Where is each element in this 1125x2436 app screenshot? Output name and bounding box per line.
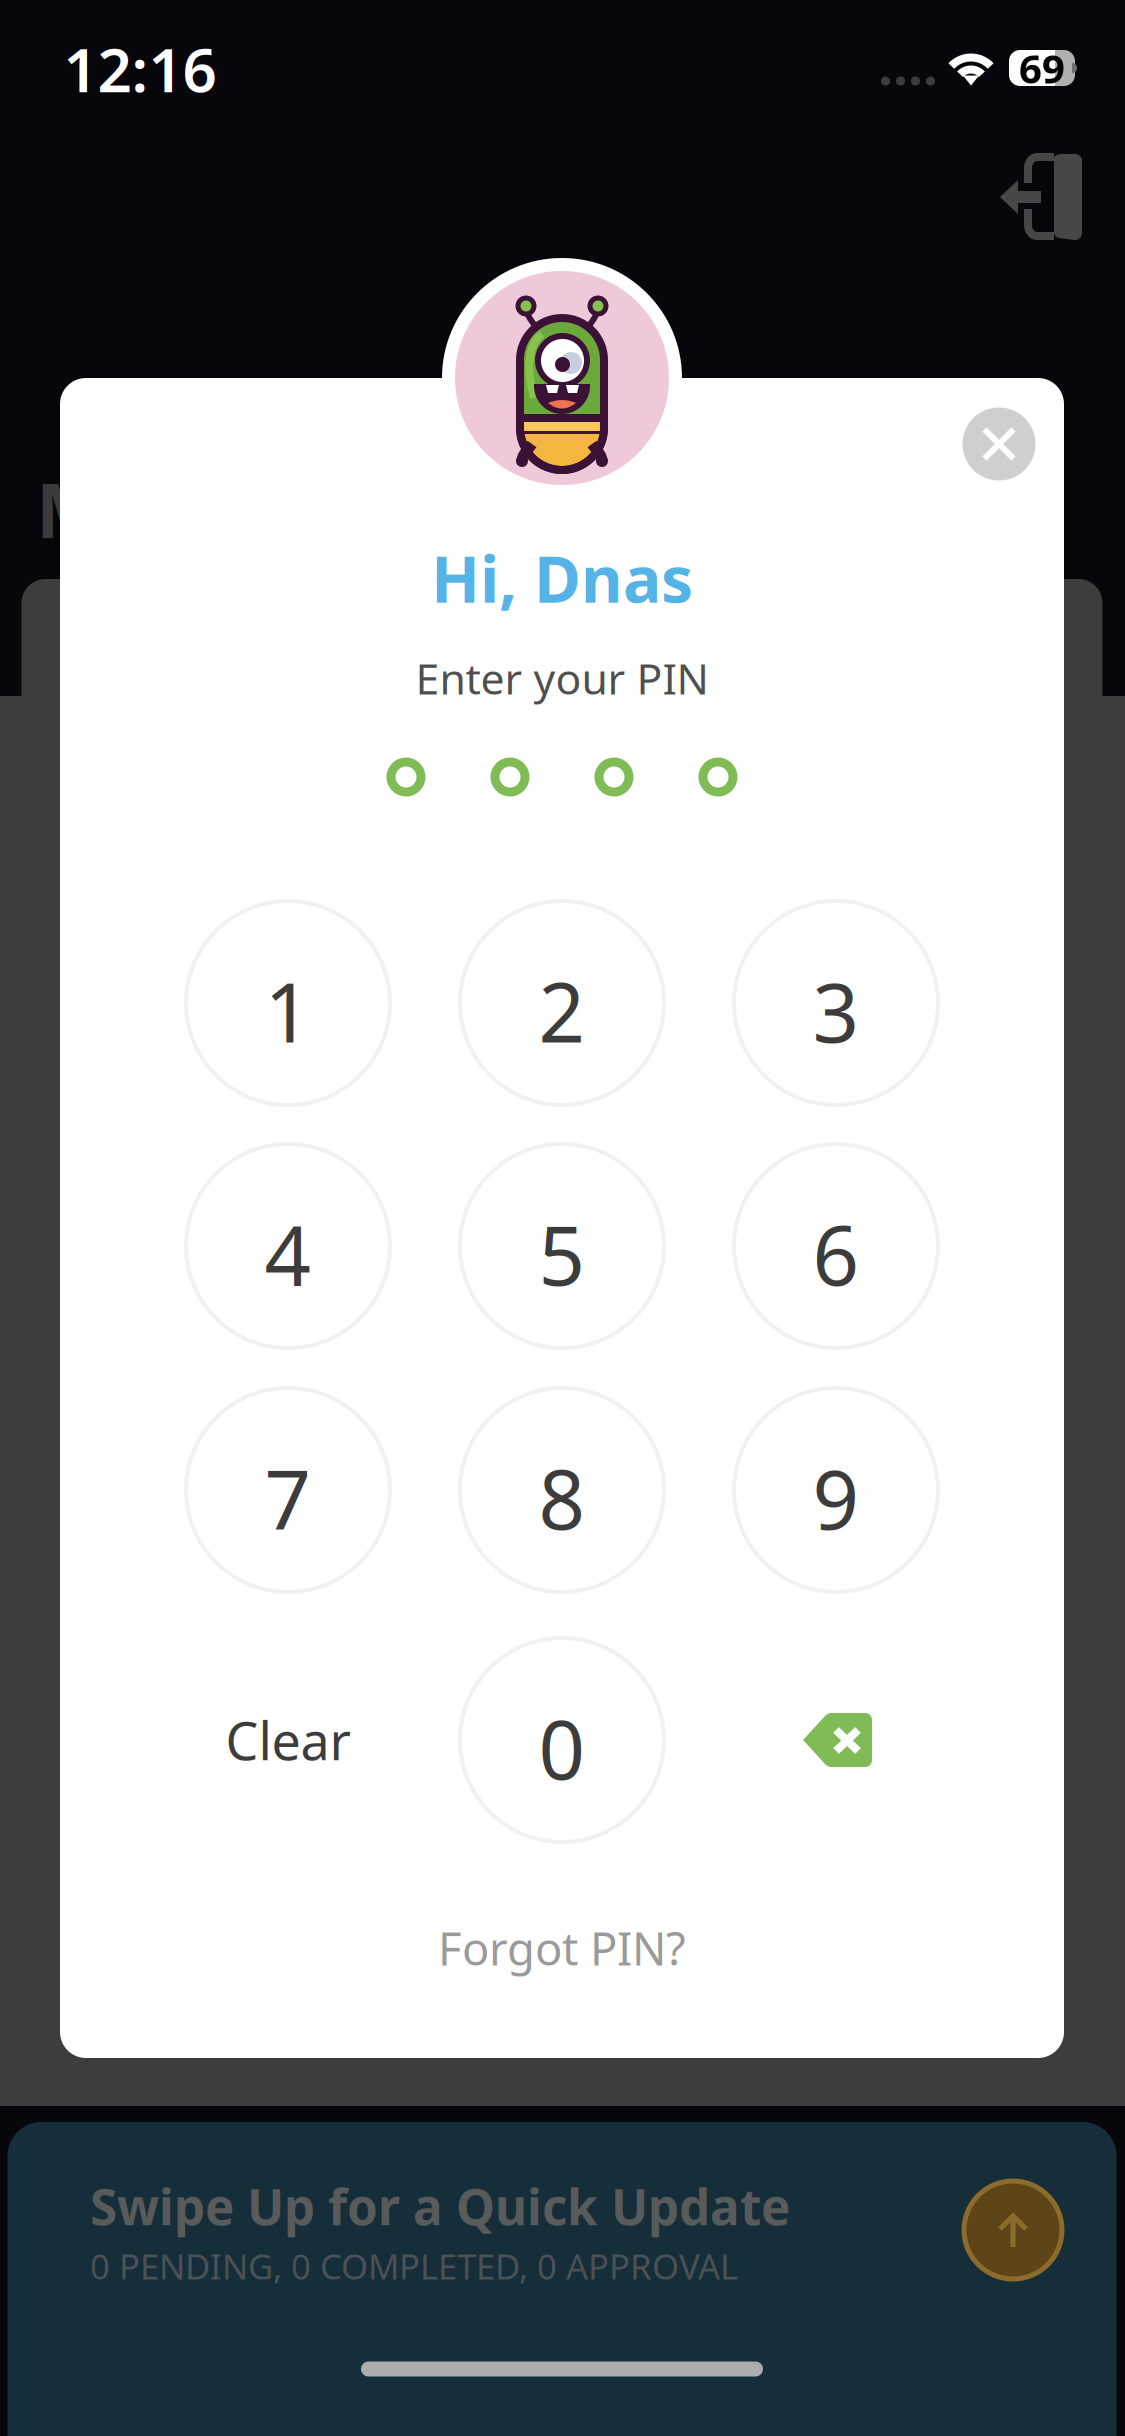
- staticText: 9: [812, 1444, 859, 1552]
- staticText: 1: [264, 957, 311, 1065]
- staticText: 7: [264, 1444, 311, 1552]
- button[interactable]: 1: [186, 901, 390, 1105]
- staticText: 0: [538, 1694, 585, 1802]
- button[interactable]: 8: [460, 1388, 664, 1592]
- button[interactable]: 0: [460, 1638, 664, 1842]
- staticText: 5: [538, 1200, 585, 1308]
- button[interactable]: 3: [734, 901, 938, 1105]
- staticText: Enter your PIN: [415, 650, 708, 706]
- staticText: 6: [812, 1200, 859, 1308]
- staticText: 8: [538, 1444, 585, 1552]
- staticText: 0 PENDING, 0 COMPLETED, 0 APPROVAL: [90, 2243, 738, 2289]
- button[interactable]: Clear: [186, 1638, 390, 1842]
- button[interactable]: 9: [734, 1388, 938, 1592]
- button[interactable]: 2: [460, 901, 664, 1105]
- staticText: 3: [812, 957, 859, 1065]
- staticText: My Dashboard: [36, 459, 572, 559]
- staticText: Swipe Up for a Quick Update: [90, 2173, 790, 2239]
- staticText: Forgot PIN?: [438, 1918, 686, 1978]
- staticText: 2: [538, 957, 585, 1065]
- staticText: 12:16: [63, 29, 216, 109]
- button[interactable]: Close: [962, 407, 1035, 480]
- button[interactable]: Delete: [734, 1638, 938, 1842]
- button[interactable]: 5: [460, 1144, 664, 1348]
- staticText: Hi, Dnas: [431, 535, 693, 620]
- button[interactable]: 7: [186, 1388, 390, 1592]
- button[interactable]: 6: [734, 1144, 938, 1348]
- button[interactable]: Log out: [1000, 154, 1082, 240]
- staticText: 4: [264, 1200, 311, 1308]
- button[interactable]: 4: [186, 1144, 390, 1348]
- button[interactable]: Forgot PIN?: [352, 1898, 772, 1998]
- staticText: Clear: [225, 1705, 350, 1775]
- staticText: 69: [1019, 41, 1065, 94]
